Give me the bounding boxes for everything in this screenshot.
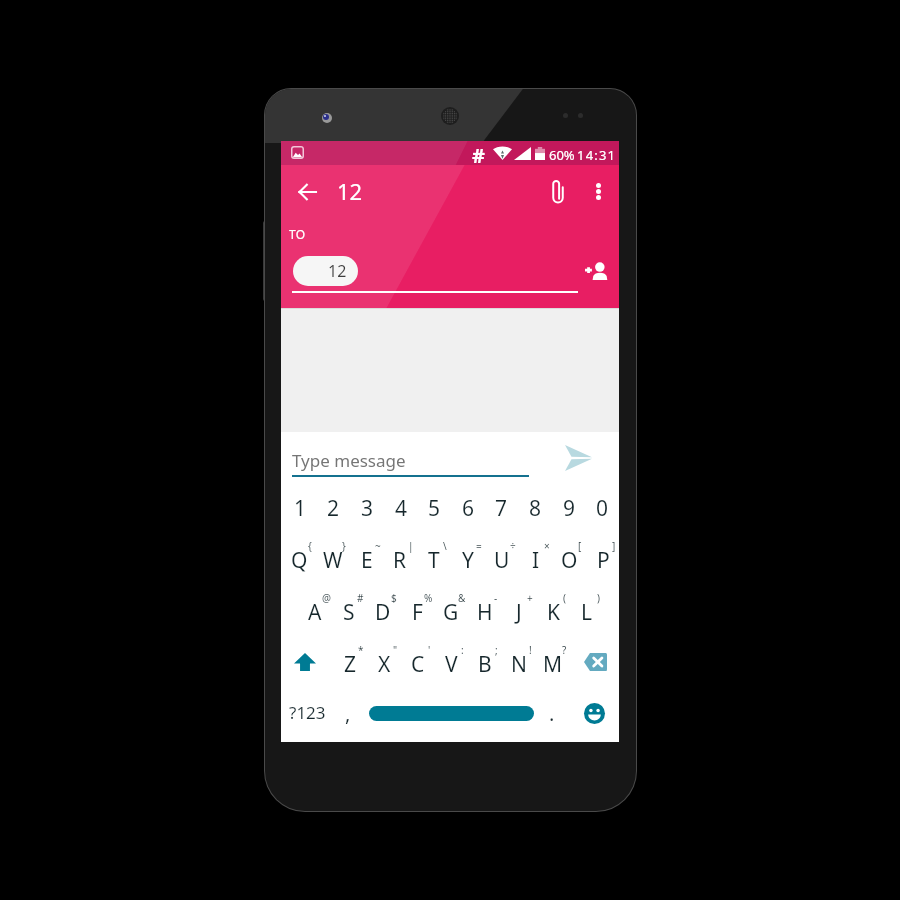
button[interactable]: R xyxy=(383,534,417,586)
staticText: 5 xyxy=(428,494,441,523)
staticText: M xyxy=(543,650,563,679)
button[interactable]: X xyxy=(367,638,401,690)
staticText: . xyxy=(549,700,555,727)
staticText: 7 xyxy=(495,494,508,523)
staticText: { xyxy=(308,539,312,553)
staticText: B xyxy=(478,650,492,679)
button[interactable]: More options xyxy=(577,170,619,212)
button[interactable]: P xyxy=(586,534,620,586)
button[interactable]: Shift xyxy=(285,636,325,688)
staticText: ? xyxy=(562,643,567,657)
button[interactable]: 12 xyxy=(293,256,358,286)
button[interactable]: V xyxy=(434,638,468,690)
button[interactable]: M xyxy=(536,638,570,690)
staticText: Z xyxy=(344,650,357,679)
staticText: , xyxy=(345,700,351,727)
button[interactable]: U xyxy=(485,534,519,586)
staticText: K xyxy=(547,598,560,627)
staticText: V xyxy=(445,650,458,679)
button[interactable]: E xyxy=(350,534,384,586)
button[interactable]: 8 xyxy=(518,482,552,534)
button[interactable]: Emoji xyxy=(574,687,614,739)
staticText: 6 xyxy=(462,494,475,523)
staticText: X xyxy=(378,650,391,679)
staticText: E xyxy=(361,546,373,575)
staticText: + xyxy=(527,591,533,605)
staticText: 0 xyxy=(596,494,609,523)
staticText: 14:31 xyxy=(577,146,617,164)
button[interactable]: W xyxy=(316,534,350,586)
staticText: S xyxy=(343,598,355,627)
button[interactable]: I xyxy=(519,534,553,586)
button[interactable]: L xyxy=(570,586,604,638)
staticText: L xyxy=(581,598,593,627)
button[interactable]: Z xyxy=(333,638,367,690)
button[interactable]: . xyxy=(537,687,567,739)
staticText: U xyxy=(494,546,510,575)
staticText: * xyxy=(358,643,364,657)
button[interactable]: Y xyxy=(451,534,485,586)
staticText: % xyxy=(424,591,433,605)
staticText: 8 xyxy=(529,494,542,523)
button[interactable]: B xyxy=(468,638,502,690)
button[interactable]: Add contact xyxy=(581,256,612,286)
button[interactable]: 9 xyxy=(552,482,586,534)
staticText: [ xyxy=(578,539,582,553)
staticText: I xyxy=(532,546,540,575)
staticText: TO xyxy=(289,226,306,242)
staticText: H xyxy=(477,598,493,627)
staticText: C xyxy=(411,650,425,679)
button[interactable]: K xyxy=(536,586,570,638)
staticText: × xyxy=(544,539,550,553)
button[interactable]: 4 xyxy=(384,482,418,534)
button[interactable]: 6 xyxy=(451,482,485,534)
button[interactable]: ?123 xyxy=(281,686,333,738)
button[interactable]: D xyxy=(366,586,400,638)
staticText: 2 xyxy=(327,494,340,523)
staticText: J xyxy=(516,598,522,627)
staticText: 4 xyxy=(395,494,408,523)
staticText: ! xyxy=(529,643,532,657)
button[interactable]: 3 xyxy=(350,482,384,534)
button[interactable]: Attach xyxy=(537,171,579,213)
button[interactable]: 0 xyxy=(585,482,619,534)
button[interactable]: N xyxy=(502,638,536,690)
staticText: 12 xyxy=(337,176,363,206)
button[interactable]: Send xyxy=(556,438,600,478)
staticText: N xyxy=(511,650,527,679)
staticText: # xyxy=(357,591,364,605)
button[interactable]: C xyxy=(401,638,435,690)
button[interactable]: Backspace xyxy=(575,636,615,688)
staticText: Type message xyxy=(292,449,406,472)
button[interactable]: F xyxy=(400,586,434,638)
button[interactable]: Back xyxy=(285,170,329,214)
staticText: ; xyxy=(495,643,498,657)
staticText: O xyxy=(561,546,578,575)
button[interactable]: Q xyxy=(282,534,316,586)
staticText: W xyxy=(323,546,343,575)
button[interactable]: G xyxy=(434,586,468,638)
button[interactable]: 2 xyxy=(316,482,350,534)
staticText: ] xyxy=(612,539,616,553)
staticText: " xyxy=(393,643,398,657)
button[interactable]: S xyxy=(332,586,366,638)
button[interactable]: 5 xyxy=(417,482,451,534)
staticText: & xyxy=(458,591,466,605)
button[interactable]: Space xyxy=(363,687,539,739)
button[interactable]: H xyxy=(468,586,502,638)
staticText: 9 xyxy=(563,494,576,523)
staticText: 3 xyxy=(361,494,374,523)
staticText: ' xyxy=(428,643,431,657)
button[interactable]: T xyxy=(417,534,451,586)
staticText: : xyxy=(461,643,464,657)
staticText: - xyxy=(494,591,498,605)
button[interactable]: 7 xyxy=(484,482,518,534)
staticText: @ xyxy=(322,591,331,605)
staticText: Q xyxy=(291,546,308,575)
button[interactable]: , xyxy=(333,687,363,739)
button[interactable]: J xyxy=(502,586,536,638)
button[interactable]: O xyxy=(552,534,586,586)
button[interactable]: 1 xyxy=(283,482,317,534)
staticText: 60% xyxy=(549,146,575,164)
button[interactable]: A xyxy=(298,586,332,638)
